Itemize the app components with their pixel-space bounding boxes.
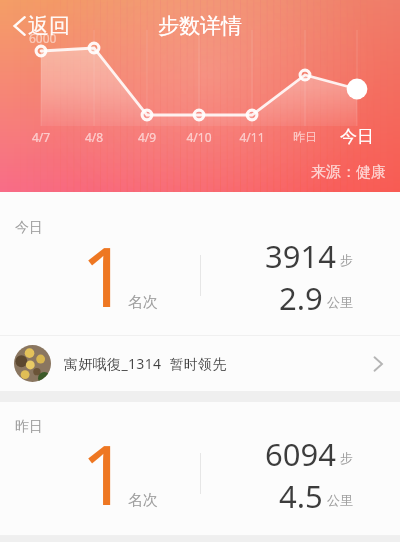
staticText: 步 (340, 450, 353, 466)
staticText: 4/11 (232, 129, 272, 145)
staticText: 4/7 (21, 129, 61, 145)
staticText: 4/9 (127, 129, 167, 145)
staticText: 公里 (327, 492, 353, 508)
staticText: 名次 (128, 293, 158, 312)
staticText: 1 (81, 417, 128, 529)
button[interactable]: 寓妍哦復_1314 暂时领先 (0, 336, 400, 391)
staticText: 步数详情 (158, 13, 242, 39)
staticText: 3914 (265, 235, 336, 277)
staticText: 4/10 (179, 129, 219, 145)
staticText: 今日 (337, 126, 377, 147)
staticText: 昨日 (15, 418, 43, 436)
staticText: 今日 (15, 219, 43, 237)
other: View ranking details (373, 356, 383, 372)
staticText: 2.9 (279, 277, 323, 319)
staticText: 昨日 (285, 129, 325, 144)
staticText: 名次 (128, 491, 158, 510)
button[interactable]: 返回 (10, 10, 73, 42)
staticText: 公里 (327, 294, 353, 310)
staticText: 6094 (265, 433, 336, 475)
staticText: 1 (81, 219, 128, 331)
staticText: 来源：健康 (311, 163, 386, 182)
staticText: 6000 (29, 30, 57, 46)
staticText: 寓妍哦復_1314 暂时领先 (64, 354, 227, 373)
staticText: 步 (340, 252, 353, 268)
staticText: 返回 (28, 13, 70, 39)
staticText: 4/8 (74, 129, 114, 145)
staticText: 4.5 (279, 475, 323, 517)
